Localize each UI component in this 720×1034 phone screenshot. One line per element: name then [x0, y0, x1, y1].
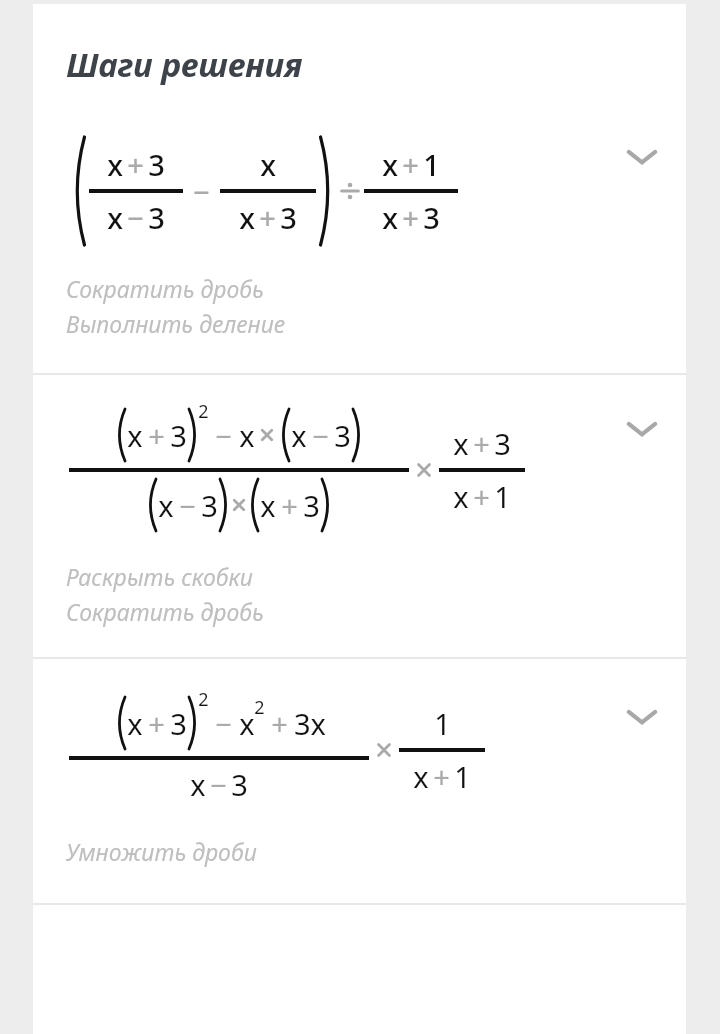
staticText: x: [107, 198, 123, 237]
staticText: x: [291, 416, 307, 455]
staticText: +: [148, 704, 165, 743]
staticText: +: [259, 198, 276, 237]
staticText: −: [193, 172, 210, 211]
button[interactable]: x: [33, 375, 686, 657]
staticText: Умножить дроби: [66, 836, 257, 867]
staticText: −: [127, 198, 144, 237]
staticText: 3: [170, 704, 187, 743]
staticText: Сократить дробь: [66, 596, 264, 627]
staticText: −: [210, 765, 227, 804]
staticText: 1: [454, 757, 471, 796]
staticText: x: [382, 198, 398, 237]
staticText: +: [473, 424, 490, 463]
staticText: x: [453, 477, 469, 516]
staticText: +: [402, 198, 419, 237]
staticText: 1: [434, 704, 451, 743]
staticText: x: [413, 757, 429, 796]
staticText: x: [453, 424, 469, 463]
staticText: +: [148, 416, 165, 455]
staticText: 2: [254, 695, 265, 719]
staticText: 3x: [294, 704, 326, 743]
staticText: x: [158, 486, 174, 525]
staticText: +: [402, 145, 419, 184]
staticText: 1: [423, 145, 440, 184]
staticText: x: [239, 416, 255, 455]
staticText: x: [127, 416, 143, 455]
staticText: +: [271, 704, 288, 743]
button[interactable]: x: [33, 659, 686, 903]
staticText: x: [382, 145, 398, 184]
staticText: x: [127, 704, 143, 743]
staticText: +: [127, 145, 144, 184]
staticText: 2: [198, 399, 209, 423]
staticText: 3: [148, 198, 165, 237]
staticText: 1: [494, 477, 511, 516]
staticText: 3: [231, 765, 248, 804]
staticText: 3: [423, 198, 440, 237]
staticText: 3: [494, 424, 511, 463]
staticText: 3: [280, 198, 297, 237]
staticText: +: [433, 757, 450, 796]
staticText: Выполнить деление: [66, 308, 286, 339]
staticText: −: [312, 416, 329, 455]
staticText: 3: [334, 416, 351, 455]
staticText: +: [281, 486, 298, 525]
button[interactable]: Expand step: [620, 695, 664, 739]
staticText: x: [239, 198, 255, 237]
staticText: −: [179, 486, 196, 525]
staticText: 2: [198, 687, 209, 711]
staticText: x: [260, 486, 276, 525]
staticText: x: [190, 765, 206, 804]
staticText: 3: [170, 416, 187, 455]
staticText: Сократить дробь: [66, 273, 264, 304]
button[interactable]: x: [33, 87, 686, 373]
staticText: −: [215, 704, 232, 743]
staticText: 3: [201, 486, 218, 525]
button[interactable]: Expand step: [620, 135, 664, 179]
staticText: x: [260, 145, 276, 184]
staticText: −: [215, 416, 232, 455]
staticText: x: [107, 145, 123, 184]
staticText: 3: [148, 145, 165, 184]
button[interactable]: Expand step: [620, 407, 664, 451]
staticText: Раскрыть скобки: [66, 561, 253, 592]
staticText: Шаги решения: [66, 42, 303, 87]
staticText: 3: [303, 486, 320, 525]
staticText: +: [473, 477, 490, 516]
staticText: x: [239, 704, 255, 743]
